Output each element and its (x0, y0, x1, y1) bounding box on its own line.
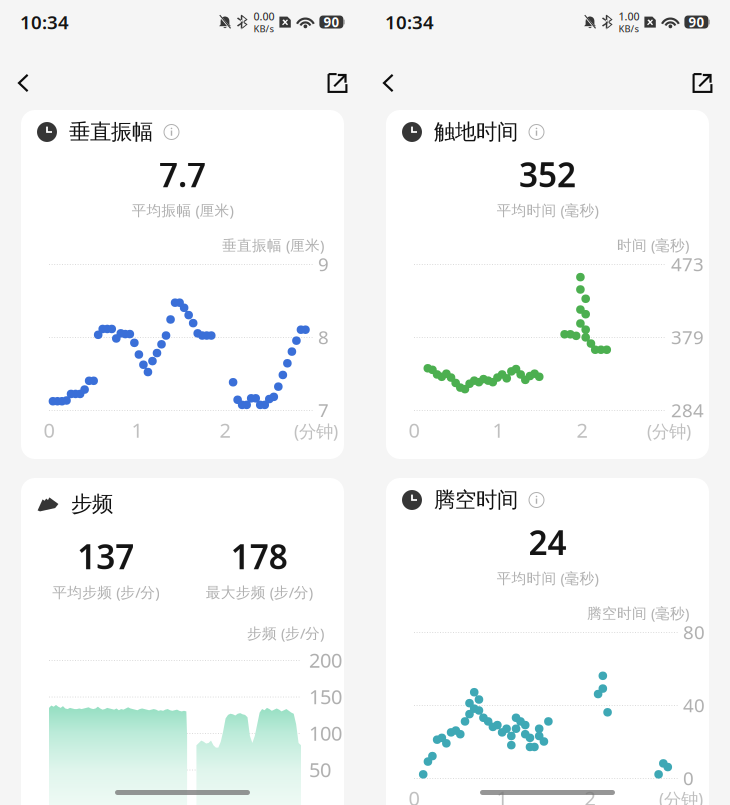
staticText: 平均时间 (毫秒) (496, 568, 598, 588)
button[interactable]: Share (672, 63, 712, 103)
staticText: 90 (688, 13, 704, 31)
staticText: 步频 (步/分) (247, 623, 324, 643)
staticText: 1 (492, 417, 503, 443)
staticText: 平均步频 (步/分) (52, 582, 159, 602)
staticText: 0 (408, 785, 419, 805)
staticText: 90 (323, 13, 339, 31)
staticText: KB/s (618, 22, 639, 35)
staticText: 137 (77, 534, 134, 578)
staticText: 284 (671, 398, 704, 422)
staticText: 时间 (毫秒) (617, 235, 689, 255)
staticText: 7 (318, 398, 329, 422)
staticText: 2 (219, 417, 230, 443)
staticText: 垂直振幅 (69, 119, 153, 145)
staticText: 80 (683, 620, 705, 644)
staticText: KB/s (253, 22, 274, 35)
button[interactable]: Back (383, 63, 423, 103)
staticText: 379 (671, 325, 704, 349)
staticText: 步频 (71, 491, 113, 517)
staticText: 0 (408, 417, 419, 443)
button[interactable]: Share (307, 63, 347, 103)
staticText: (分钟) (294, 419, 338, 442)
staticText: 178 (231, 534, 288, 578)
staticText: 8 (318, 325, 329, 349)
staticText: 2 (584, 785, 595, 805)
staticText: 垂直振幅 (厘米) (222, 235, 324, 255)
staticText: 平均时间 (毫秒) (496, 200, 598, 220)
staticText: 100 (309, 720, 342, 746)
staticText: 1 (496, 785, 507, 805)
staticText: 腾空时间 (毫秒) (587, 603, 689, 623)
staticText: 10:34 (20, 10, 69, 34)
staticText: 最大步频 (步/分) (206, 582, 313, 602)
staticText: 2 (576, 417, 587, 443)
staticText: (分钟) (647, 419, 691, 442)
staticText: 9 (318, 252, 329, 276)
button[interactable]: Back (18, 63, 58, 103)
staticText: 0 (43, 417, 54, 443)
staticText: 触地时间 (434, 119, 518, 145)
staticText: 10:34 (385, 10, 434, 34)
staticText: 40 (683, 693, 705, 717)
staticText: 7.7 (159, 152, 206, 196)
staticText: 0.00 (253, 9, 274, 23)
staticText: 200 (309, 647, 342, 673)
staticText: 1.00 (618, 9, 639, 23)
staticText: 150 (309, 683, 342, 710)
staticText: 352 (519, 152, 576, 196)
staticText: 平均振幅 (厘米) (131, 200, 233, 220)
staticText: (分钟) (659, 787, 703, 805)
staticText: 473 (671, 252, 704, 276)
staticText: 0 (683, 766, 694, 790)
staticText: 1 (131, 417, 142, 443)
staticText: 24 (528, 520, 566, 564)
staticText: 腾空时间 (434, 487, 518, 513)
staticText: 50 (309, 756, 331, 783)
